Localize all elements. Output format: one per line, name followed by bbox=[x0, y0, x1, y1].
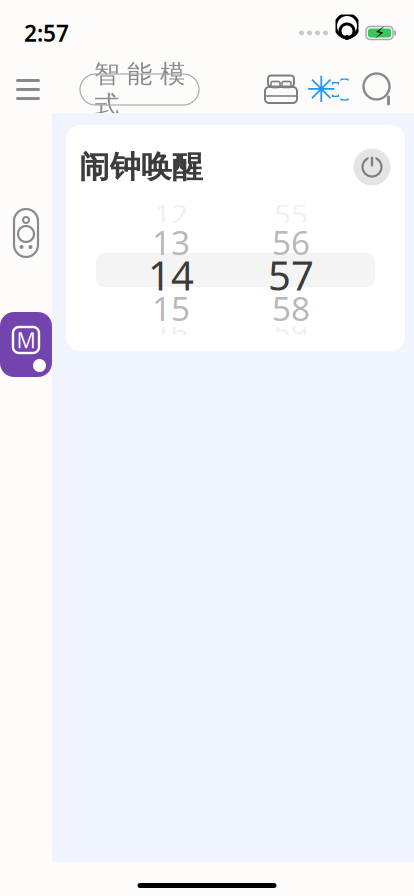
staticText: 56 bbox=[272, 220, 310, 264]
staticText: 15 bbox=[152, 286, 190, 330]
staticText: 闹钟唤醒 bbox=[79, 148, 203, 186]
staticText: 55 bbox=[274, 194, 308, 233]
staticText: ✳ bbox=[306, 69, 336, 110]
staticText: 59 bbox=[274, 311, 308, 350]
button[interactable]: Remote control bbox=[0, 202, 52, 264]
staticText: 12 bbox=[154, 194, 188, 233]
staticText: 智 能 模 式 bbox=[94, 58, 185, 121]
staticText: 57 bbox=[268, 248, 314, 301]
button[interactable]: Music bbox=[0, 312, 52, 377]
button[interactable]: Bluetooth bbox=[310, 66, 350, 113]
staticText: 14 bbox=[148, 248, 194, 301]
staticText: 2:57 bbox=[24, 18, 69, 48]
button[interactable]: Search bbox=[354, 66, 404, 113]
staticText: ⚡︎ bbox=[374, 24, 385, 42]
staticText: 13 bbox=[152, 220, 190, 264]
button[interactable]: Menu bbox=[0, 66, 56, 113]
button[interactable]: 智 能 模 式 bbox=[80, 74, 199, 105]
staticText: 16 bbox=[154, 311, 188, 350]
staticText: M bbox=[16, 326, 35, 354]
button[interactable]: Sleep mode bbox=[258, 66, 304, 113]
button[interactable]: Power bbox=[352, 147, 392, 187]
staticText: 58 bbox=[272, 286, 310, 330]
